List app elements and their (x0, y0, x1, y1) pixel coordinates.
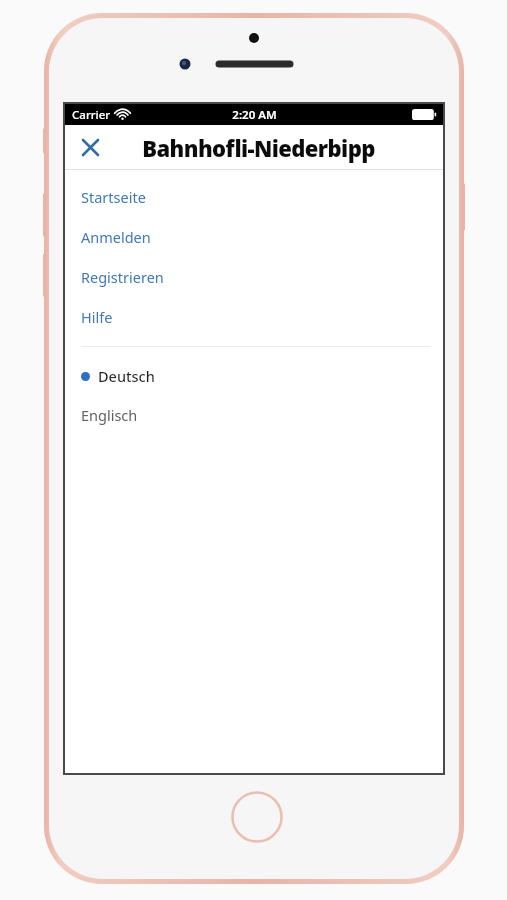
staticText: Carrier (72, 107, 111, 123)
staticText: Englisch (81, 405, 138, 425)
button[interactable]: Hilfe (65, 297, 443, 337)
staticText: Anmelden (81, 227, 151, 247)
staticText: Registrieren (81, 267, 164, 287)
button[interactable]: Deutsch (65, 360, 443, 392)
staticText: Startseite (81, 187, 146, 207)
button[interactable]: Close (73, 130, 107, 164)
button[interactable]: Anmelden (65, 217, 443, 257)
button[interactable]: Registrieren (65, 257, 443, 297)
staticText: Hilfe (81, 307, 113, 327)
staticText: Deutsch (98, 366, 155, 386)
staticText: Bahnhofli-Niederbipp (142, 133, 375, 163)
button[interactable]: Startseite (65, 177, 443, 217)
button[interactable]: Englisch (65, 400, 443, 430)
staticText: 2:20 AM (232, 107, 277, 123)
other: Home (231, 791, 283, 843)
